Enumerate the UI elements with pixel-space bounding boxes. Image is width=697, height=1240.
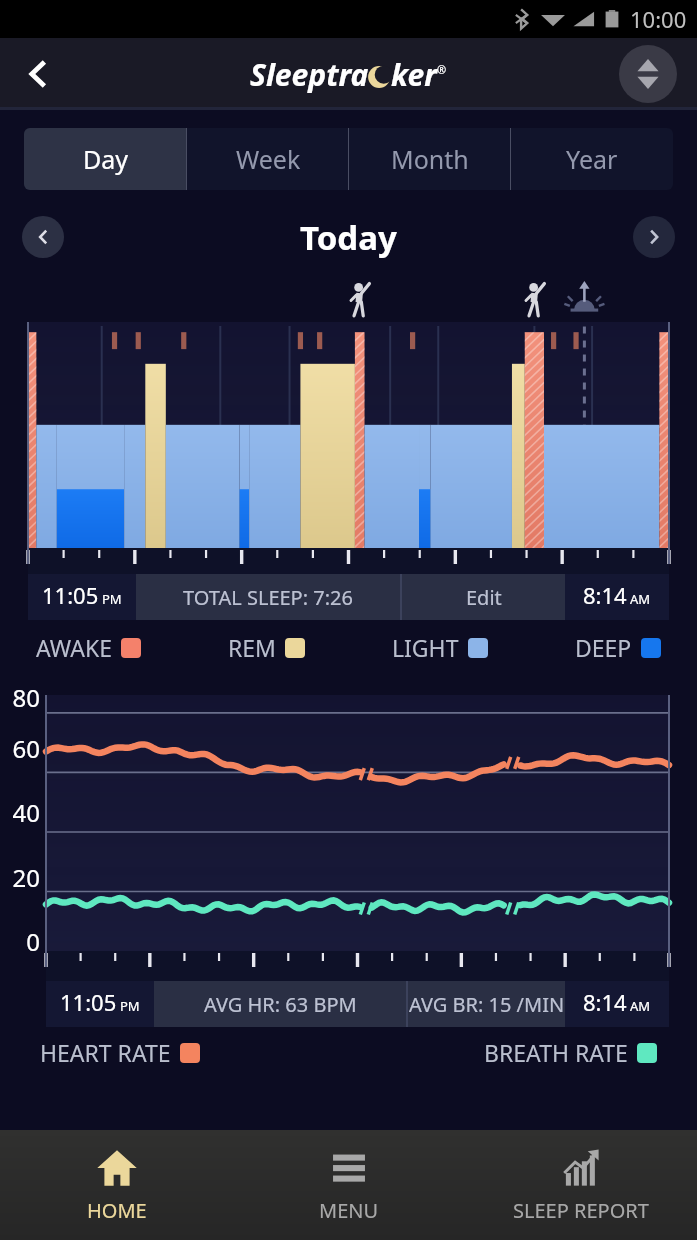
staticText: 10:00	[630, 4, 687, 34]
staticText: Sleeptra	[250, 54, 369, 95]
staticText: AVG HR: 63 BPM	[204, 991, 357, 1018]
staticText: REM	[228, 632, 276, 663]
button[interactable]: HOME	[0, 1130, 233, 1240]
button[interactable]: REM	[228, 632, 305, 663]
button[interactable]: 8:14	[565, 981, 669, 1027]
staticText: 8:14	[583, 987, 627, 1017]
staticText: AVG BR: 15 /MIN	[409, 991, 565, 1018]
staticText: 20	[12, 861, 40, 894]
button[interactable]: Previous day	[22, 216, 64, 258]
button[interactable]: Week	[187, 128, 349, 190]
staticText: 60	[12, 732, 40, 765]
staticText: 11:05	[60, 987, 117, 1017]
staticText: PM	[120, 997, 140, 1015]
staticText: Year	[566, 142, 618, 176]
button[interactable]: HEART RATE	[40, 1037, 200, 1068]
staticText: Edit	[466, 584, 502, 611]
staticText: Week	[236, 142, 301, 176]
staticText: Day	[83, 142, 129, 176]
button[interactable]: 8:14	[565, 574, 669, 620]
button[interactable]: DEEP	[575, 632, 661, 663]
button[interactable]: AVG HR: 63 BPM	[154, 981, 406, 1027]
button[interactable]: Day	[24, 128, 187, 190]
button[interactable]: Sort order	[619, 45, 677, 103]
staticText: TOTAL SLEEP: 7:26	[183, 584, 353, 611]
staticText: SLEEP REPORT	[513, 1197, 649, 1224]
staticText: DEEP	[575, 632, 632, 663]
button[interactable]: 11:05	[28, 574, 136, 620]
button[interactable]: Year	[511, 128, 673, 190]
staticText: 80	[12, 681, 40, 714]
button[interactable]: BREATH RATE	[484, 1037, 657, 1068]
button[interactable]: AVG BR: 15 /MIN	[408, 981, 565, 1027]
staticText: LIGHT	[392, 632, 459, 663]
staticText: HOME	[87, 1197, 147, 1224]
button[interactable]: SLEEP REPORT	[465, 1130, 697, 1240]
staticText: 0	[26, 925, 40, 958]
staticText: Month	[391, 142, 469, 176]
button[interactable]: Next day	[633, 216, 675, 258]
staticText: AWAKE	[36, 632, 112, 663]
button[interactable]: Back	[12, 47, 66, 101]
staticText: MENU	[319, 1197, 379, 1224]
staticText: BREATH RATE	[484, 1037, 628, 1068]
staticText: Today	[300, 215, 397, 260]
button[interactable]: Month	[349, 128, 511, 190]
button[interactable]: TOTAL SLEEP: 7:26	[136, 574, 400, 620]
staticText: 8:14	[583, 580, 627, 610]
button[interactable]: 11:05	[46, 981, 154, 1027]
staticText: AM	[630, 590, 651, 608]
button[interactable]: AWAKE	[36, 632, 141, 663]
staticText: PM	[102, 590, 122, 608]
staticText: 11:05	[42, 580, 99, 610]
staticText: ®	[437, 62, 447, 77]
button[interactable]: Edit	[402, 574, 565, 620]
staticText: AM	[630, 997, 651, 1015]
button[interactable]: MENU	[233, 1130, 465, 1240]
staticText: ker	[391, 54, 437, 95]
button[interactable]: LIGHT	[392, 632, 488, 663]
staticText: 40	[12, 796, 40, 829]
staticText: HEART RATE	[40, 1037, 171, 1068]
